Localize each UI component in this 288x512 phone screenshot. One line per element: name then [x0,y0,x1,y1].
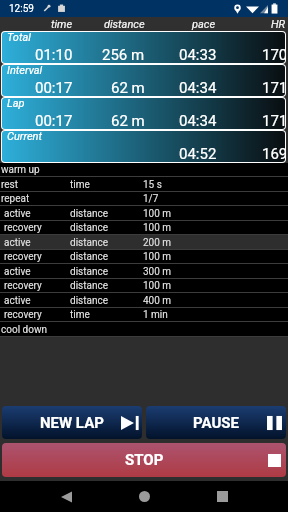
staticText: 00:17 [35,79,73,96]
staticText: 100 m [143,222,172,234]
staticText: repeat [1,193,30,205]
staticText: 400 m [143,295,172,307]
button[interactable]: PAUSE [146,406,286,439]
staticText: recovery [4,251,42,263]
staticText: Total [7,32,31,44]
button[interactable]: active [0,264,288,279]
staticText: STOP [125,451,164,469]
button[interactable]: rest [0,177,288,192]
staticText: HR [271,18,286,31]
staticText: distance [70,208,109,220]
button[interactable]: cool down [0,322,288,337]
staticText: pace [192,18,216,31]
staticText: 04:34 [179,79,217,96]
button[interactable]: active [0,206,288,221]
staticText: 100 m [143,280,172,292]
button[interactable]: STOP [2,443,286,477]
button[interactable]: Lap [2,98,285,129]
staticText: 256 m [102,46,145,63]
button[interactable]: repeat [0,192,288,206]
staticText: 04:34 [179,112,217,129]
staticText: Interval [7,65,43,77]
button[interactable]: Current [2,131,285,162]
staticText: 62 m [111,112,145,129]
staticText: 200 m [143,237,172,249]
staticText: 15 s [143,179,162,191]
staticText: warm up [1,164,40,176]
staticText: active [4,208,31,220]
staticText: active [4,237,31,249]
button[interactable]: recovery [0,308,288,322]
button[interactable]: recovery [0,221,288,235]
staticText: rest [1,179,19,191]
staticText: distance [70,280,109,292]
button[interactable]: Home [122,481,166,512]
staticText: 171 [262,112,285,129]
staticText: distance [70,266,109,278]
staticText: active [4,266,31,278]
staticText: 62 m [111,79,145,96]
staticText: Lap [7,98,25,110]
button[interactable]: active [0,293,288,308]
button[interactable]: active [0,235,288,250]
staticText: 01:10 [35,46,73,63]
staticText: time [70,179,90,191]
staticText: 1 min [143,309,168,321]
staticText: distance [70,237,109,249]
staticText: 00:17 [35,112,73,129]
staticText: 100 m [143,208,172,220]
staticText: 170 [262,46,285,63]
staticText: NEW LAP [40,414,104,432]
button[interactable]: Back [44,481,88,512]
staticText: distance [104,18,145,31]
button[interactable]: Total [2,32,285,63]
staticText: 1/7 [143,193,159,205]
button[interactable]: recovery [0,279,288,293]
button[interactable]: warm up [0,163,288,177]
staticText: time [70,309,90,321]
button[interactable]: NEW LAP [2,406,142,439]
staticText: 04:33 [179,46,217,63]
staticText: 300 m [143,266,172,278]
staticText: 171 [262,79,285,96]
staticText: 04:52 [179,145,217,162]
staticText: recovery [4,280,42,292]
staticText: time [51,18,73,31]
staticText: 12:59 [9,3,34,15]
staticText: 100 m [143,251,172,263]
staticText: 169 [262,145,285,162]
staticText: distance [70,251,109,263]
staticText: recovery [4,222,42,234]
staticText: distance [70,222,109,234]
staticText: active [4,295,31,307]
staticText: distance [70,295,109,307]
staticText: cool down [1,324,47,336]
staticText: Current [7,131,42,143]
staticText: recovery [4,309,42,321]
staticText: PAUSE [193,414,239,432]
button[interactable]: recovery [0,250,288,264]
button[interactable]: Recent apps [200,481,244,512]
button[interactable]: Interval [2,65,285,96]
